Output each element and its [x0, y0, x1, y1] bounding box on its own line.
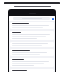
button[interactable] — [10, 42, 54, 47]
button[interactable] — [10, 22, 54, 29]
button[interactable]: Account — [52, 18, 54, 20]
button[interactable]: Search — [13, 17, 50, 20]
button[interactable] — [10, 58, 54, 67]
button[interactable] — [10, 31, 54, 40]
button[interactable] — [10, 49, 54, 56]
button[interactable] — [10, 69, 54, 72]
